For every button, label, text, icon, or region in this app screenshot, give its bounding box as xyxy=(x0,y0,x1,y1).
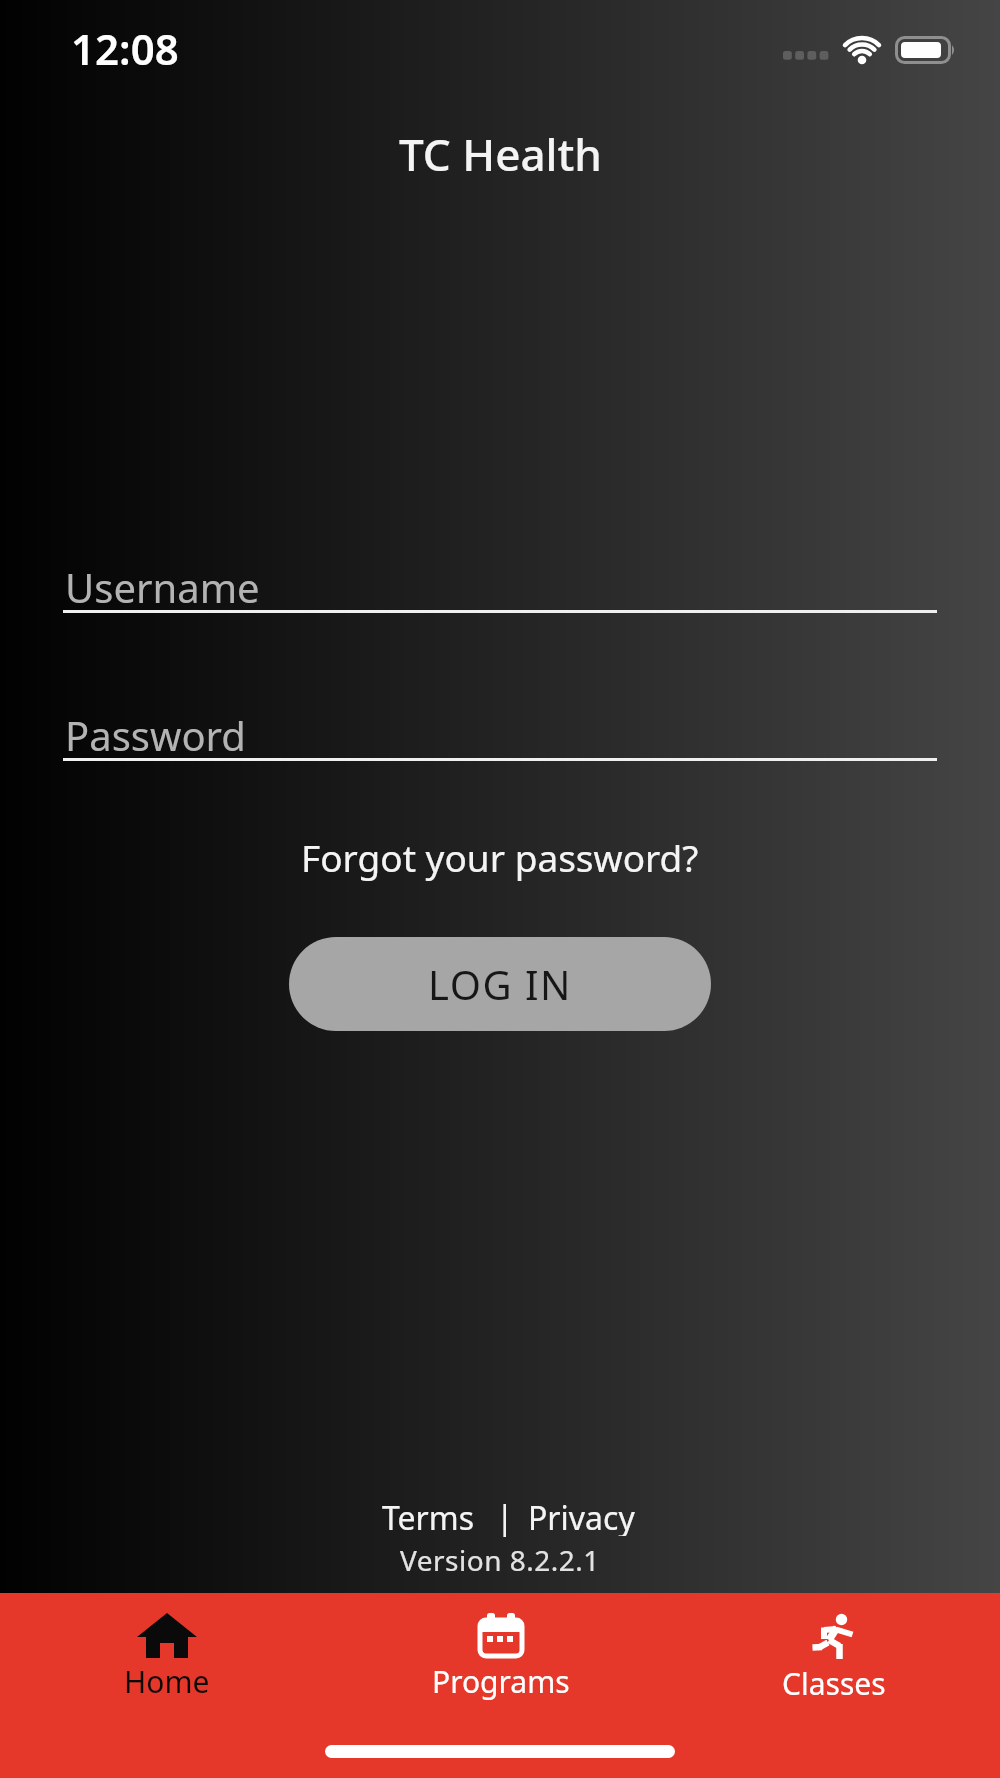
button[interactable]: LOG IN xyxy=(289,937,711,1031)
button[interactable]: Home xyxy=(0,1593,334,1778)
staticText: Home xyxy=(124,1661,210,1702)
button[interactable]: Forgot your password? xyxy=(301,832,699,882)
button[interactable]: Password xyxy=(63,708,937,762)
staticText: Terms xyxy=(382,1496,475,1536)
staticText: Programs xyxy=(432,1661,570,1702)
button[interactable]: Terms xyxy=(330,1496,475,1536)
staticText: LOG IN xyxy=(428,957,572,1011)
button[interactable]: Classes xyxy=(667,1593,1000,1778)
staticText: TC Health xyxy=(399,124,602,184)
button[interactable]: Username xyxy=(63,560,937,614)
staticText: Forgot your password? xyxy=(301,832,699,882)
staticText: 12:08 xyxy=(71,20,179,77)
staticText: Username xyxy=(65,560,260,614)
staticText: Password xyxy=(65,708,246,762)
button[interactable]: Privacy xyxy=(528,1496,673,1536)
button[interactable]: Programs xyxy=(334,1593,667,1778)
staticText: Classes xyxy=(782,1663,886,1704)
staticText: | xyxy=(496,1495,514,1539)
staticText: Version 8.2.2.1 xyxy=(400,1541,600,1579)
staticText: Privacy xyxy=(528,1496,635,1536)
